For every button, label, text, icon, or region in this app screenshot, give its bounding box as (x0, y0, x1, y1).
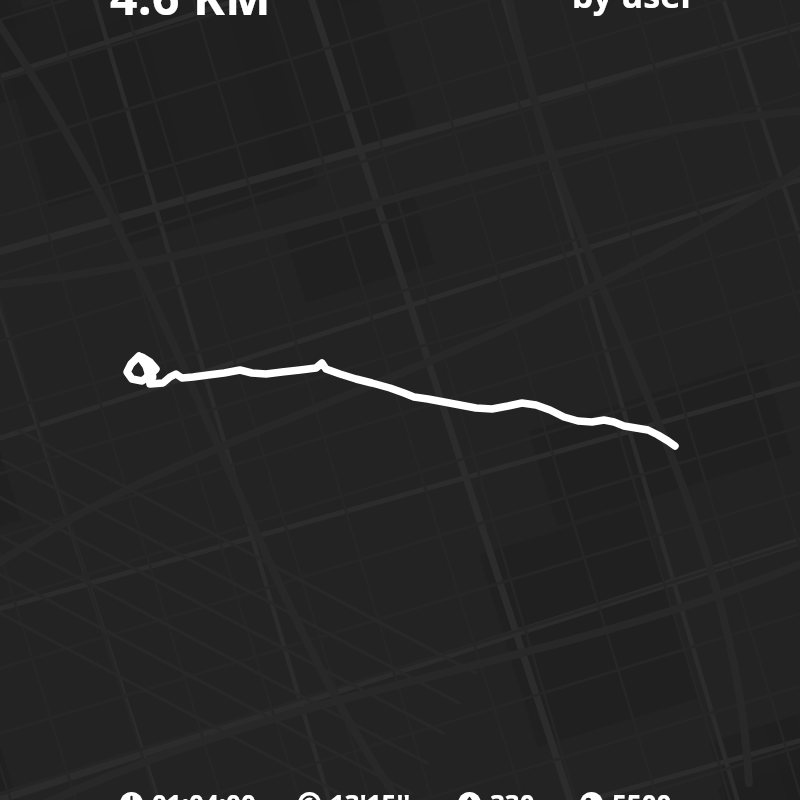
button[interactable]: 4.6 KM (110, 0, 272, 29)
button[interactable]: Pace (298, 783, 458, 800)
button[interactable]: by user (572, 0, 696, 18)
button[interactable]: Steps (580, 783, 710, 800)
button[interactable]: Calories (458, 783, 580, 800)
staticText: 4.6 KM (110, 0, 272, 29)
staticText: 5500 (612, 786, 672, 800)
staticText: 01:04:00 (152, 786, 256, 800)
staticText: 330 (490, 786, 535, 800)
button[interactable]: Duration (120, 783, 298, 800)
staticText: by user (572, 0, 696, 18)
staticText: 13'15'' (330, 786, 411, 800)
